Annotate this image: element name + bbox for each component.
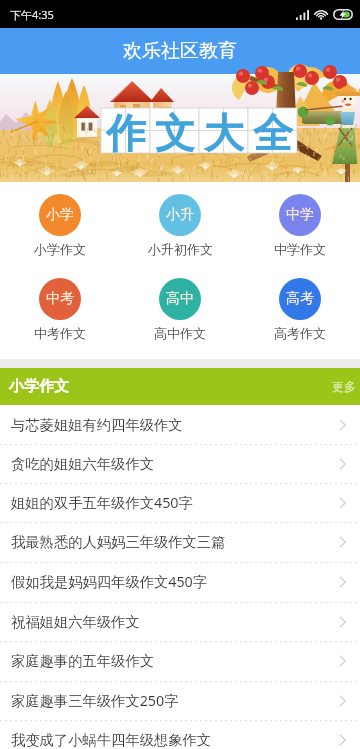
staticText: 中学作文: [274, 241, 326, 257]
other: Open article: [339, 695, 346, 707]
staticText: 下午4:35: [10, 7, 54, 22]
staticText: 高考作文: [274, 325, 326, 341]
staticText: 姐姐的双手五年级作文450字: [11, 493, 193, 513]
button[interactable]: 我变成了小蜗牛四年级想象作文: [0, 720, 360, 749]
button[interactable]: 家庭趣事三年级作文250字: [0, 681, 360, 720]
other: Open article: [339, 616, 346, 628]
button[interactable]: 中考: [0, 278, 120, 341]
button[interactable]: 祝福姐姐六年级作文: [0, 602, 360, 641]
button[interactable]: 作: [0, 74, 360, 182]
other: Open article: [339, 419, 346, 431]
button[interactable]: 小学: [0, 194, 120, 257]
staticText: 小升初作文: [148, 241, 213, 257]
other: Open article: [339, 734, 346, 746]
staticText: 小学作文: [34, 241, 86, 257]
other: Open article: [339, 576, 346, 588]
button[interactable]: 我最熟悉的人妈妈三年级作文三篇: [0, 522, 360, 562]
button[interactable]: 贪吃的姐姐六年级作文: [0, 444, 360, 483]
button[interactable]: 中学: [240, 194, 360, 257]
staticText: 作: [106, 108, 146, 153]
staticText: 祝福姐姐六年级作文: [11, 613, 140, 631]
staticText: 我最熟悉的人妈妈三年级作文三篇: [11, 533, 226, 551]
staticText: 高中: [166, 290, 194, 308]
button[interactable]: 姐姐的双手五年级作文450字: [0, 483, 360, 522]
staticText: 更多: [332, 379, 356, 394]
staticText: 与芯菱姐姐有约四年级作文: [11, 416, 183, 434]
staticText: 假如我是妈妈四年级作文450字: [11, 572, 208, 592]
button[interactable]: 高中: [120, 278, 240, 341]
staticText: 中考作文: [34, 325, 86, 341]
button[interactable]: 与芯菱姐姐有约四年级作文: [0, 405, 360, 444]
staticText: 高考: [286, 290, 314, 308]
other: Open article: [339, 536, 346, 548]
button[interactable]: 高考: [240, 278, 360, 341]
staticText: 贪吃的姐姐六年级作文: [11, 455, 154, 473]
button[interactable]: 更多: [320, 373, 360, 400]
button[interactable]: 小升: [120, 194, 240, 257]
staticText: 文: [155, 108, 195, 153]
staticText: 小学作文: [9, 377, 69, 396]
staticText: 中考: [46, 290, 74, 308]
staticText: 全: [253, 108, 293, 153]
button[interactable]: 假如我是妈妈四年级作文450字: [0, 562, 360, 602]
staticText: 高中作文: [154, 325, 206, 341]
other: Open article: [339, 458, 346, 470]
staticText: 大: [204, 108, 244, 153]
staticText: 家庭趣事的五年级作文: [11, 652, 154, 670]
staticText: 小学: [46, 206, 74, 224]
staticText: 中学: [286, 206, 314, 224]
button[interactable]: 欢乐社区教育: [0, 28, 360, 74]
staticText: 家庭趣事三年级作文250字: [11, 691, 179, 711]
other: Open article: [339, 655, 346, 667]
staticText: 小升: [166, 206, 194, 224]
staticText: 我变成了小蜗牛四年级想象作文: [11, 731, 212, 749]
button[interactable]: 家庭趣事的五年级作文: [0, 641, 360, 681]
staticText: 欢乐社区教育: [123, 39, 237, 63]
other: Open article: [339, 497, 346, 509]
